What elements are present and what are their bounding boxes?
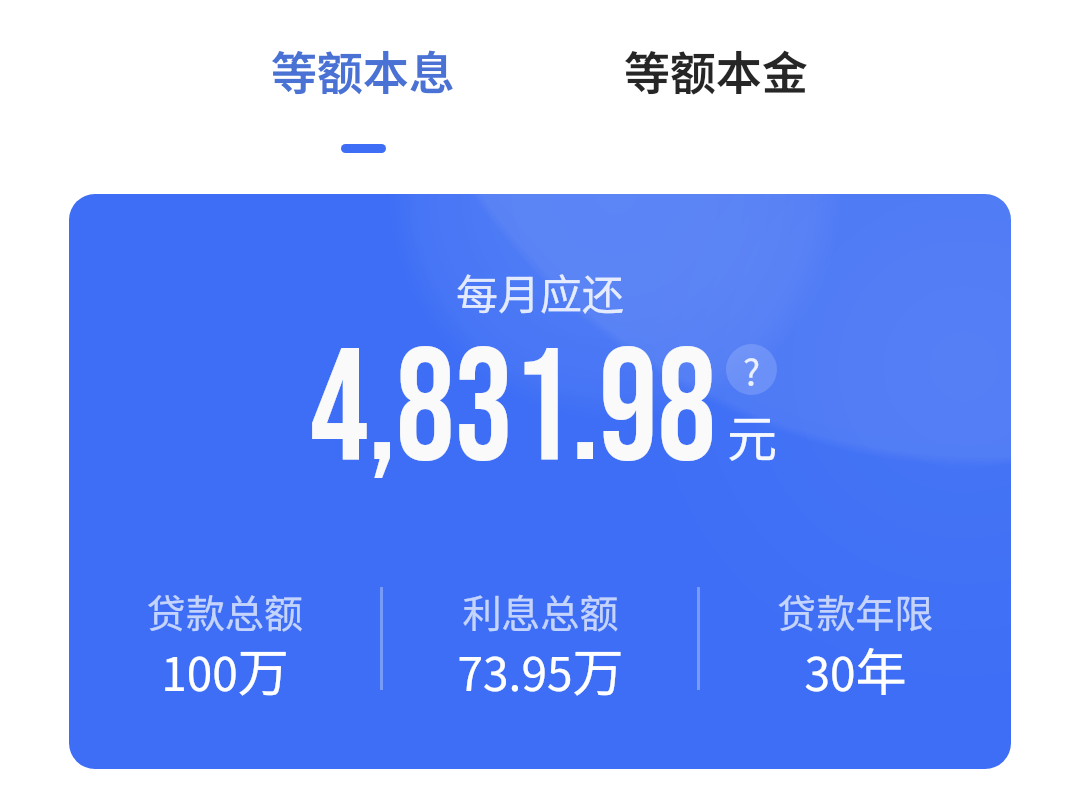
staticText: 30年 [700, 632, 1011, 706]
staticText: 利息总额 [383, 583, 698, 639]
button[interactable]: 等额本息 [243, 20, 483, 175]
staticText: ? [743, 344, 761, 395]
button[interactable]: 等额本金 [596, 20, 836, 175]
staticText: 元 [727, 399, 777, 471]
staticText: 贷款年限 [700, 583, 1011, 639]
staticText: 73.95万 [383, 632, 698, 706]
staticText: 等额本金 [624, 37, 808, 104]
button[interactable]: 还款方式说明 [726, 344, 777, 395]
staticText: 每月应还 [69, 261, 1011, 322]
staticText: 100万 [69, 632, 381, 706]
staticText: 贷款总额 [69, 583, 381, 639]
staticText: 等额本息 [271, 37, 455, 104]
staticText: 4,831.98 [310, 316, 717, 507]
